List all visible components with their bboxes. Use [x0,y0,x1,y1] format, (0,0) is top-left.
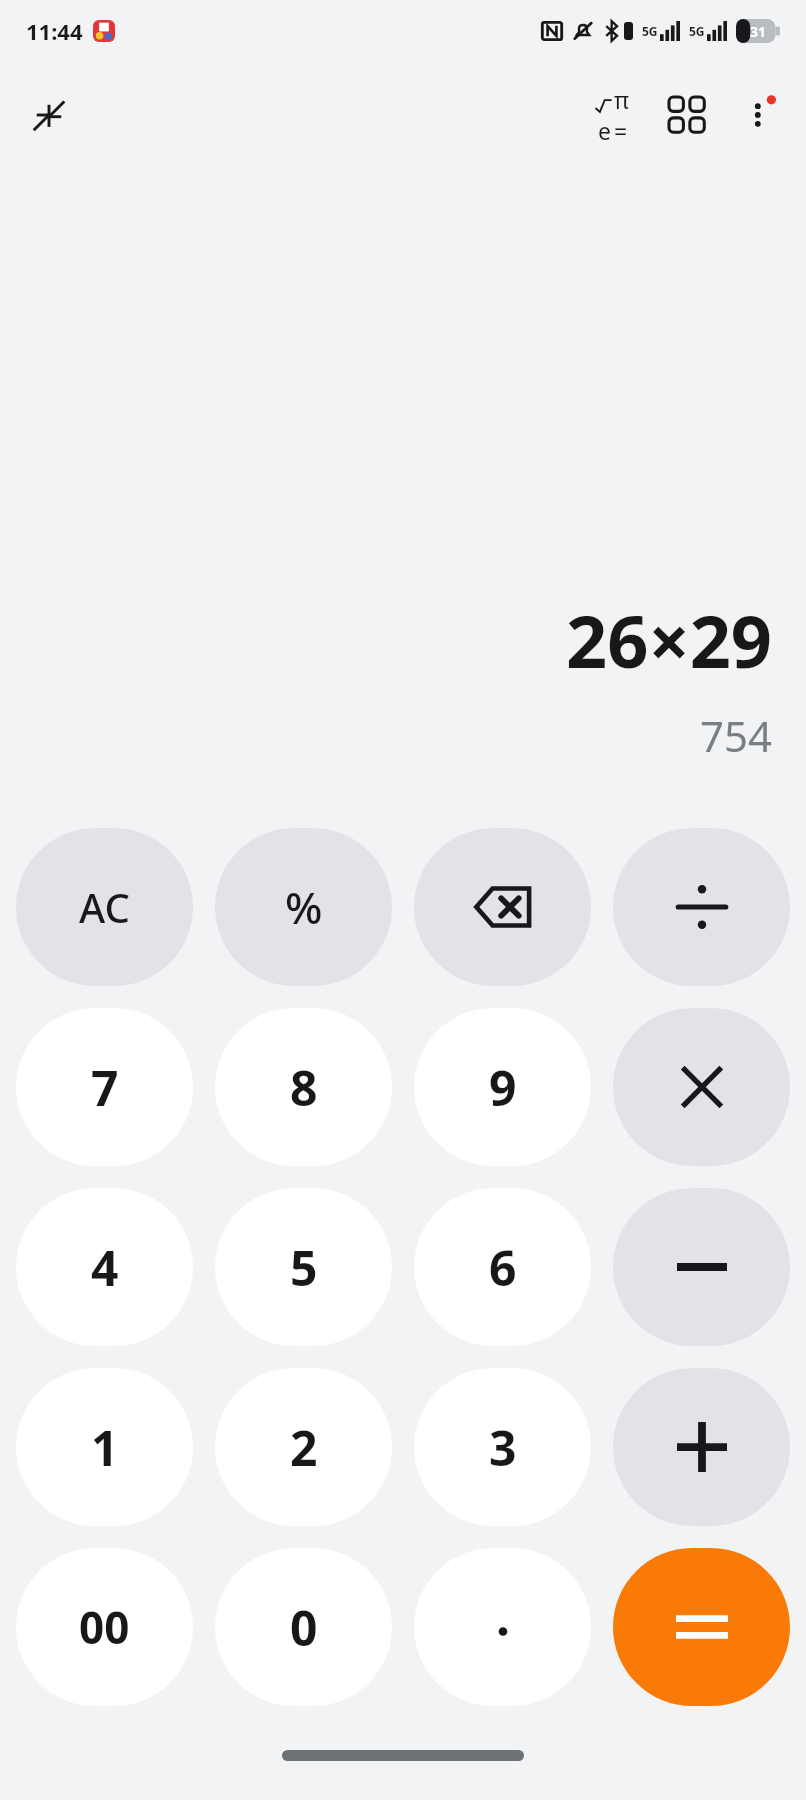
button[interactable]: Plus [613,1368,790,1526]
staticText: % [285,877,323,937]
button[interactable]: Scientific mode [576,78,650,152]
staticText: 0 [290,1595,318,1660]
staticText: 5G [689,23,705,39]
button[interactable]: Divide [613,828,790,986]
button[interactable]: 0 [215,1548,392,1706]
button[interactable]: Backspace [414,828,591,986]
staticText: e [598,115,611,146]
staticText: = [614,115,628,146]
button[interactable]: 00 [16,1548,193,1706]
button[interactable]: 3 [414,1368,591,1526]
button[interactable]: Multiply [613,1008,790,1166]
staticText: 8 [290,1055,318,1120]
staticText: 9 [489,1055,517,1120]
button[interactable]: 5 [215,1188,392,1346]
button[interactable]: 6 [414,1188,591,1346]
staticText: 5 [290,1235,318,1300]
staticText: 31 [750,22,767,41]
button[interactable]: 7 [16,1008,193,1166]
staticText: 7 [91,1055,119,1120]
staticText: 3 [489,1415,517,1480]
button[interactable]: Keypad layout [650,78,724,152]
button[interactable]: 1 [16,1368,193,1526]
staticText: 5G [642,23,658,39]
staticText: 754 [699,707,772,764]
staticText: 00 [79,1597,130,1657]
staticText: 4 [91,1235,119,1300]
button[interactable]: More options [724,78,798,152]
staticText: 6 [489,1235,517,1300]
button[interactable]: 9 [414,1008,591,1166]
staticText: AC [79,880,130,934]
button[interactable]: 2 [215,1368,392,1526]
staticText: 26×29 [566,591,772,689]
staticText: 11:44 [26,16,83,46]
button[interactable]: 8 [215,1008,392,1166]
button[interactable]: Collapse [18,84,80,146]
button[interactable]: Minus [613,1188,790,1346]
staticText: π [614,84,630,115]
staticText: 1 [91,1415,119,1480]
button[interactable]: 4 [16,1188,193,1346]
button[interactable]: Equals [613,1548,790,1706]
button[interactable]: AC [16,828,193,986]
button[interactable]: Decimal point [414,1548,591,1706]
staticText: 2 [290,1415,318,1480]
button[interactable]: % [215,828,392,986]
